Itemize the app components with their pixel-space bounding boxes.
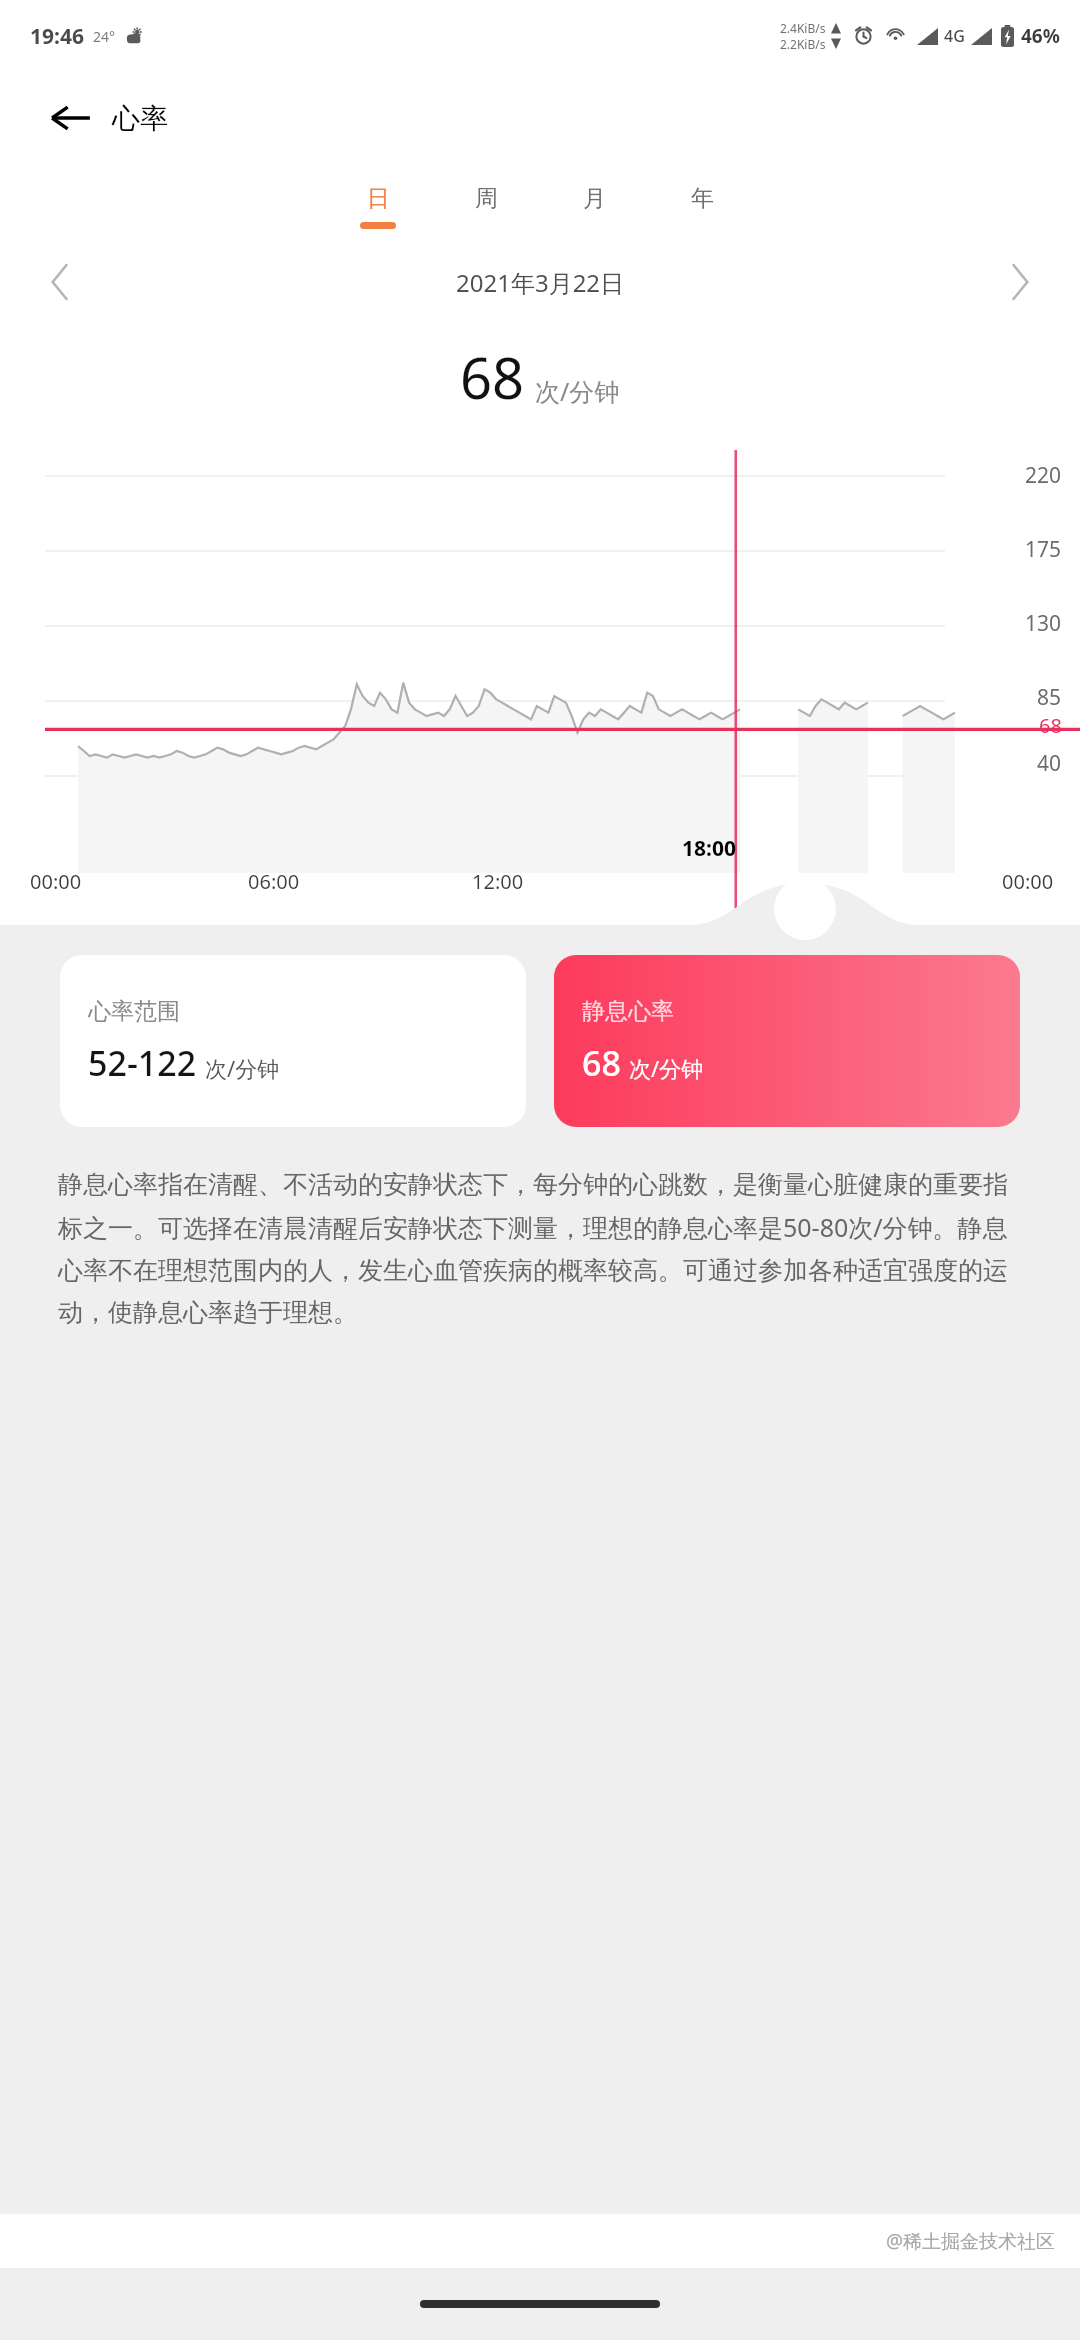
button[interactable]: 静息心率 [554, 955, 1020, 1127]
staticText: 130 [1025, 609, 1062, 638]
staticText: 68 [1039, 712, 1062, 739]
staticText: 85 [1037, 683, 1062, 712]
staticText: 4G [944, 25, 965, 47]
staticText: 次/分钟 [535, 374, 620, 408]
staticText: 次/分钟 [205, 1053, 280, 1083]
staticText: 00:00 [30, 868, 82, 895]
staticText: 12:00 [472, 868, 524, 895]
button[interactable]: Previous day [32, 254, 88, 310]
button[interactable]: Next day [992, 254, 1048, 310]
staticText: 日 [367, 184, 390, 213]
button[interactable]: 年 [648, 184, 756, 229]
staticText: 周 [475, 184, 498, 213]
staticText: 2.4KiB/s [780, 20, 826, 36]
staticText: 06:00 [248, 868, 300, 895]
staticText: 2021年3月22日 [456, 266, 625, 299]
staticText: 心率范围 [88, 997, 180, 1026]
staticText: 心率 [112, 101, 168, 136]
staticText: 46% [1021, 23, 1060, 49]
staticText: @稀土掘金技术社区 [886, 2228, 1056, 2254]
staticText: 静息心率指在清醒、不活动的安静状态下，每分钟的心跳数，是衡量心脏健康的重要指标之… [58, 1169, 1022, 1329]
staticText: 24° [93, 27, 116, 46]
button[interactable]: 心率范围 [60, 955, 526, 1127]
staticText: 68 [460, 339, 525, 415]
staticText: 68 [582, 1040, 621, 1086]
staticText: 175 [1025, 535, 1062, 564]
staticText: 40 [1037, 749, 1062, 778]
staticText: 18:00 [682, 834, 736, 863]
button[interactable]: 月 [540, 184, 648, 229]
button[interactable]: Back [40, 87, 102, 149]
staticText: 次/分钟 [629, 1053, 704, 1083]
staticText: 2.2KiB/s [780, 36, 826, 52]
staticText: 静息心率 [582, 997, 674, 1026]
staticText: 220 [1025, 461, 1062, 490]
button[interactable]: 周 [432, 184, 540, 229]
staticText: 月 [583, 184, 606, 213]
staticText: 19:46 [30, 22, 84, 51]
staticText: 00:00 [1002, 868, 1054, 895]
staticText: 52-122 [88, 1040, 197, 1086]
button[interactable]: 日 [324, 184, 432, 229]
staticText: 年 [691, 184, 714, 213]
